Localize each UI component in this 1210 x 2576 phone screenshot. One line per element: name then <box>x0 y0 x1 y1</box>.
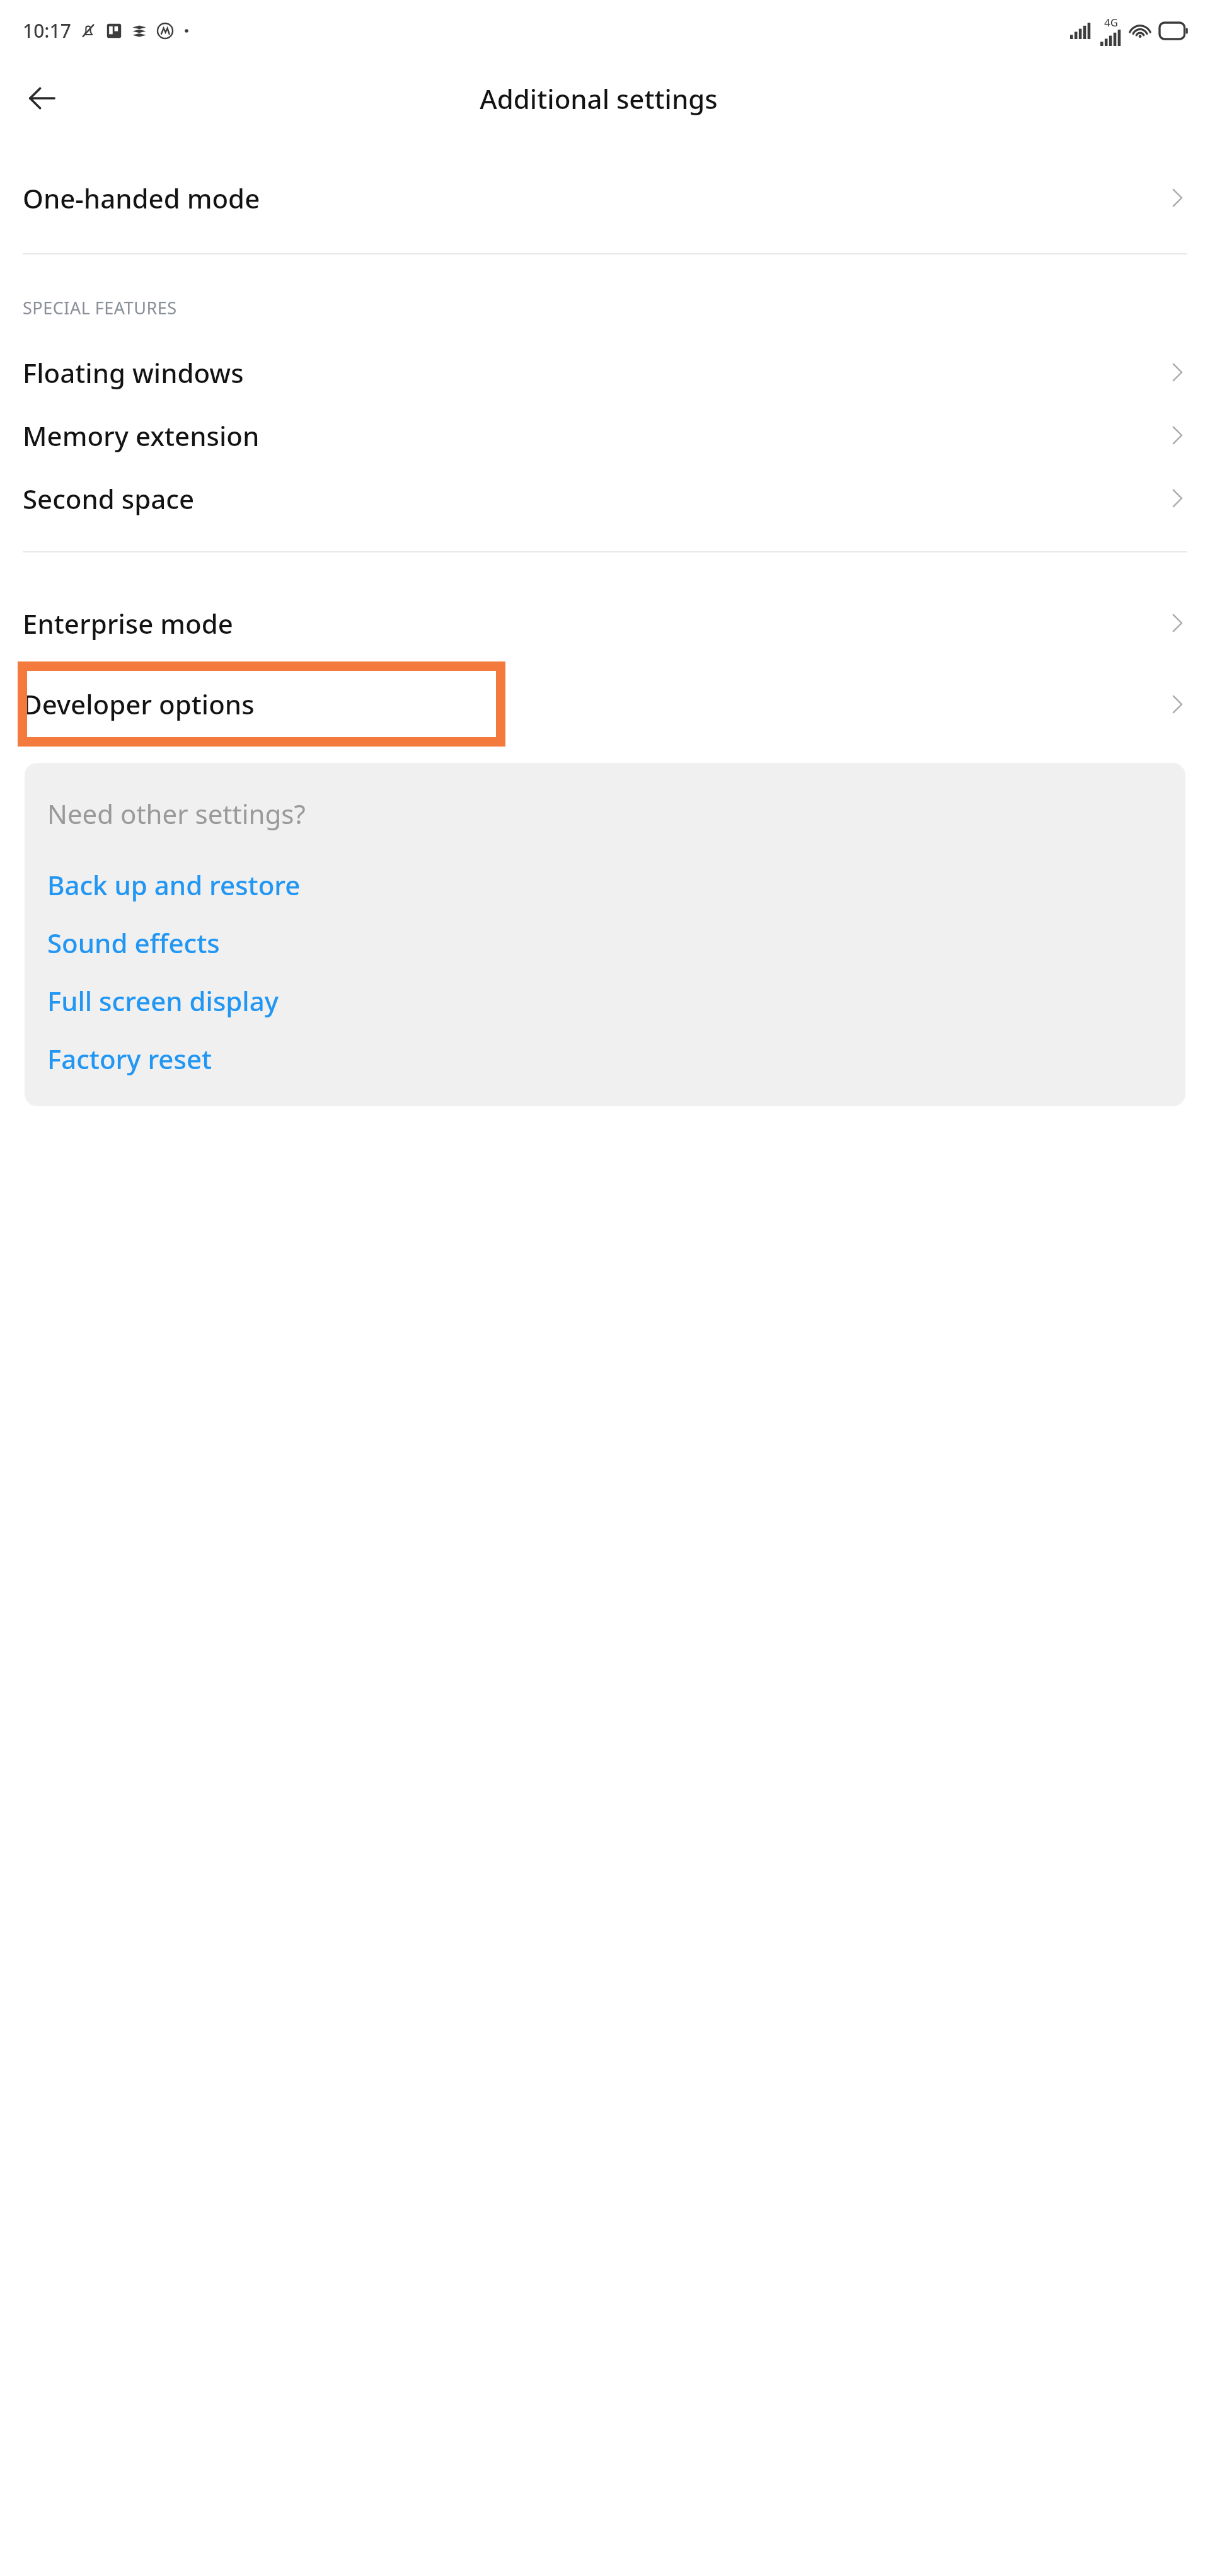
button[interactable]: Second space <box>0 467 1210 530</box>
button[interactable]: Back up and restore <box>47 856 1185 913</box>
button[interactable]: Sound effects <box>47 913 1185 971</box>
staticText: Sound effects <box>47 925 220 961</box>
staticText: Developer options <box>23 686 1163 722</box>
staticText: 10:17 <box>23 18 71 43</box>
staticText: SPECIAL FEATURES <box>23 296 177 319</box>
button[interactable]: Full screen display <box>47 971 1185 1029</box>
staticText: Factory reset <box>47 1041 212 1077</box>
staticText: One-handed mode <box>23 180 1163 216</box>
staticText: Back up and restore <box>47 867 301 903</box>
staticText: Full screen display <box>47 983 279 1019</box>
staticText: Second space <box>23 481 1163 517</box>
button[interactable]: Enterprise mode <box>0 592 1210 655</box>
button[interactable]: Memory extension <box>0 404 1210 467</box>
button[interactable]: Factory reset <box>47 1029 1185 1087</box>
button[interactable]: One-handed mode <box>0 166 1210 229</box>
staticText: 4G <box>1104 15 1119 30</box>
button[interactable]: Developer options <box>0 686 1210 722</box>
staticText: Enterprise mode <box>23 605 1163 641</box>
staticText: Memory extension <box>23 418 1163 454</box>
button[interactable]: Floating windows <box>0 341 1210 404</box>
staticText: Need other settings? <box>47 796 306 832</box>
staticText: Additional settings <box>480 81 718 117</box>
button[interactable]: Back <box>18 74 66 122</box>
staticText: Floating windows <box>23 355 1163 391</box>
